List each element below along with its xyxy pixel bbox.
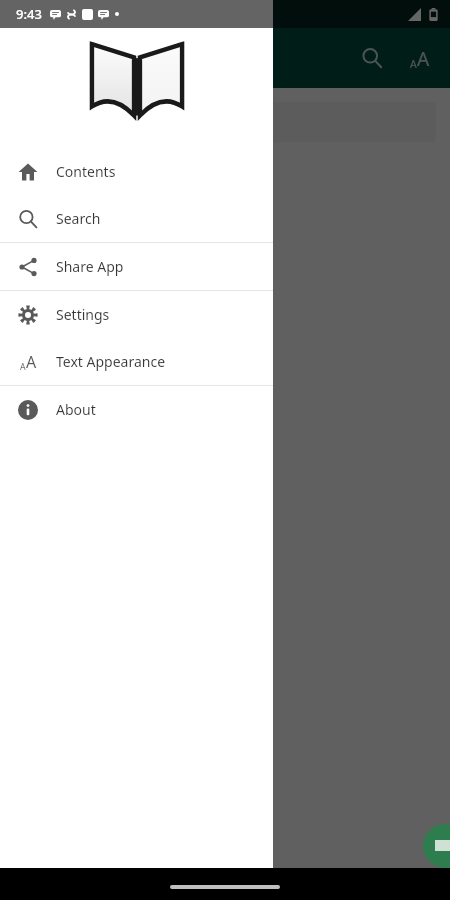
staticText: Text Appearance: [56, 352, 166, 371]
staticText: Share App: [56, 257, 124, 276]
button[interactable]: Settings: [0, 291, 273, 338]
staticText: About: [56, 400, 96, 419]
staticText: A: [410, 57, 417, 71]
staticText: Search: [56, 209, 101, 228]
button[interactable]: Bookmark: [423, 824, 450, 868]
button[interactable]: Search: [0, 195, 273, 242]
staticText: 9:43: [16, 5, 42, 23]
staticText: A: [26, 351, 37, 373]
button[interactable]: About: [0, 386, 273, 433]
staticText: Settings: [56, 305, 110, 324]
staticText: Contents: [56, 162, 116, 181]
button[interactable]: Share App: [0, 243, 273, 290]
button[interactable]: Bhagavad Gita Telugu Book: [14, 102, 436, 142]
button[interactable]: Contents: [0, 148, 273, 195]
staticText: Bhagavad Gita Telugu Book: [26, 112, 220, 132]
button[interactable]: A: [0, 338, 273, 385]
staticText: A: [417, 45, 430, 71]
button[interactable]: Text Appearance: [396, 34, 444, 82]
button[interactable]: Search: [348, 34, 396, 82]
staticText: A: [20, 361, 26, 373]
